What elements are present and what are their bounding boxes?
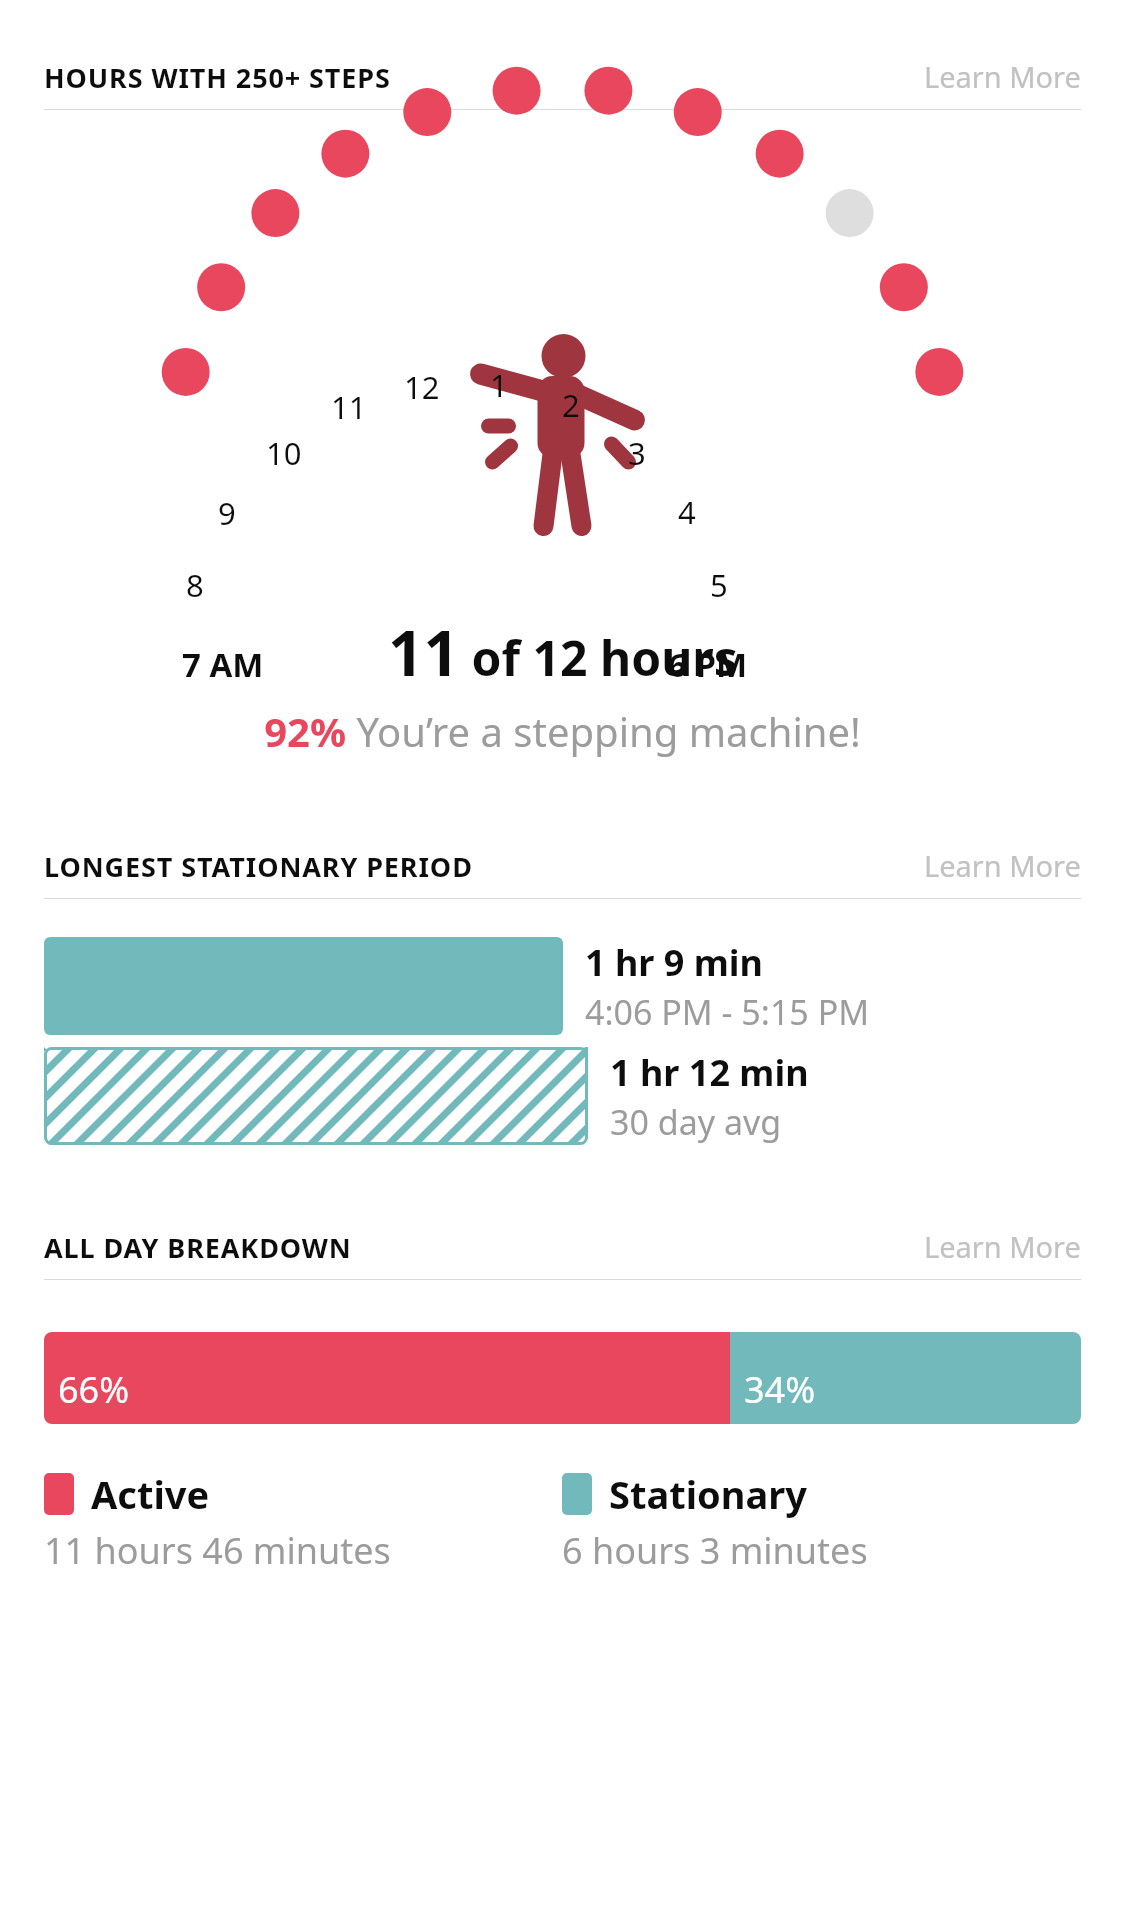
button[interactable]: Learn More	[924, 57, 1081, 96]
staticText: Learn More	[924, 1227, 1081, 1266]
staticText: 1	[490, 364, 508, 406]
staticText: 1 hr 9 min	[585, 938, 764, 987]
staticText: 11 of 12 hours	[388, 610, 738, 694]
staticText: 9	[218, 492, 236, 534]
staticText: 11	[331, 386, 367, 428]
button[interactable]: Learn More	[924, 1227, 1081, 1266]
staticText: 2	[562, 384, 580, 426]
staticText: 5	[710, 564, 728, 606]
staticText: 10	[266, 432, 302, 474]
staticText: 66%	[58, 1365, 130, 1414]
staticText: 92% You’re a stepping machine!	[264, 704, 861, 758]
staticText: LONGEST STATIONARY PERIOD	[44, 848, 473, 885]
staticText: 11 hours 46 minutes	[44, 1526, 391, 1575]
button[interactable]: 1 hr 9 min	[44, 937, 1081, 1035]
button[interactable]: 1 hr 12 min	[44, 1047, 1081, 1145]
staticText: 4	[678, 491, 696, 533]
staticText: 4:06 PM - 5:15 PM	[585, 989, 870, 1035]
button[interactable]: 66%	[44, 1332, 1081, 1424]
staticText: Learn More	[924, 57, 1081, 96]
staticText: 12	[404, 366, 440, 408]
staticText: Active	[91, 1468, 210, 1520]
staticText: HOURS WITH 250+ STEPS	[44, 59, 391, 96]
button[interactable]: Active	[44, 1468, 562, 1575]
staticText: 3	[628, 432, 646, 474]
staticText: 30 day avg	[610, 1099, 782, 1145]
staticText: 8	[186, 564, 204, 606]
button[interactable]: Learn More	[924, 846, 1081, 885]
staticText: 1 hr 12 min	[610, 1048, 809, 1097]
staticText: 6 PM	[668, 642, 748, 687]
button[interactable]: Stationary	[562, 1468, 1081, 1575]
staticText: 34%	[744, 1365, 816, 1414]
staticText: 7 AM	[182, 642, 264, 687]
staticText: Learn More	[924, 846, 1081, 885]
staticText: Stationary	[609, 1468, 807, 1520]
staticText: 6 hours 3 minutes	[562, 1526, 868, 1575]
staticText: ALL DAY BREAKDOWN	[44, 1229, 352, 1266]
